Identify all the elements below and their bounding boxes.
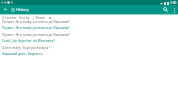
button[interactable]: Search <box>160 5 170 14</box>
staticText: 3 Counter <box>2 16 17 20</box>
staticText: Привет. Як я можу дістатися до Варшави? <box>2 19 70 24</box>
button[interactable]: Navigate up <box>0 5 11 14</box>
button[interactable]: Привет. Як я можу дістатися до Варшави? <box>0 33 178 46</box>
staticText: History <box>16 7 29 12</box>
button[interactable]: Dzień dobry. Skąd pochodzisz? <box>0 46 178 59</box>
staticText: Dzień dobry. Skąd pochodzisz? <box>2 45 50 50</box>
button[interactable]: Привет. Як я можу дістатися до Варшави? <box>0 20 178 33</box>
staticText: Sort by <box>19 16 30 20</box>
staticText: Привет. Як я можу дістатися до Варшави? <box>2 32 70 37</box>
staticText: Хороший день. Звідки ти <box>2 51 43 56</box>
button[interactable]: More options <box>170 6 178 14</box>
staticText: | Name <box>33 16 45 20</box>
staticText: Cześć, Jak dojechać do Warszawy? <box>2 38 55 43</box>
staticText: 1:00 <box>170 1 177 5</box>
button[interactable]: Filter <box>48 16 52 20</box>
staticText: Привет. Як я можу дістатися до Варшави? <box>2 25 70 30</box>
